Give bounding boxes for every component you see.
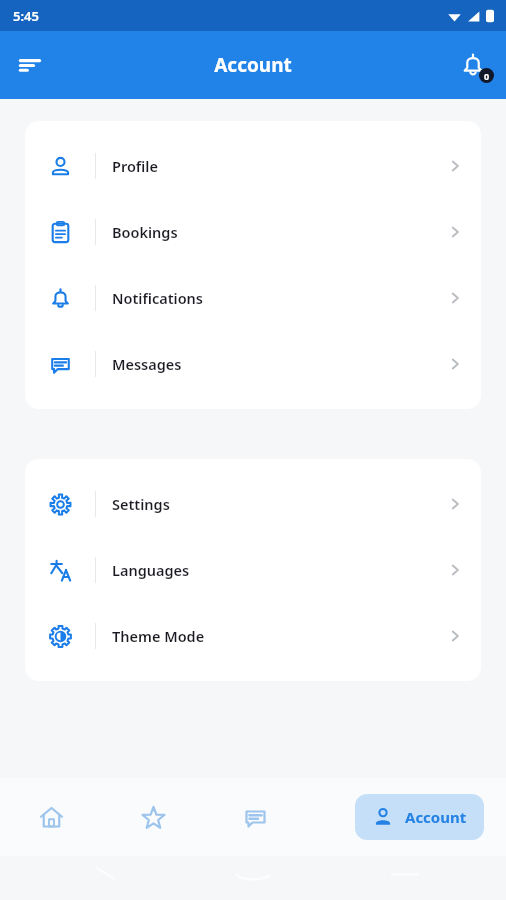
staticText: Account <box>405 807 467 827</box>
staticText: Languages <box>112 560 190 580</box>
button[interactable]: Notifications <box>450 42 496 88</box>
button[interactable]: Settings <box>25 471 481 537</box>
staticText: Theme Mode <box>112 626 205 646</box>
staticText: Bookings <box>112 222 178 242</box>
button[interactable]: Profile <box>25 133 481 199</box>
staticText: Profile <box>112 156 158 176</box>
button[interactable]: Account <box>355 794 484 840</box>
button[interactable]: Home <box>0 789 102 845</box>
button[interactable]: Notifications <box>25 265 481 331</box>
button[interactable]: Theme Mode <box>25 603 481 669</box>
staticText: Notifications <box>112 288 204 308</box>
staticText: 0 <box>484 70 490 82</box>
button[interactable]: Languages <box>25 537 481 603</box>
staticText: Settings <box>112 494 170 514</box>
button[interactable]: Favourites <box>102 789 204 845</box>
button[interactable]: Messages <box>25 331 481 397</box>
staticText: 5:45 <box>13 7 39 25</box>
staticText: Messages <box>112 354 182 374</box>
button[interactable]: Menu <box>8 43 52 87</box>
staticText: Account <box>214 52 292 78</box>
button[interactable]: Bookings <box>25 199 481 265</box>
button[interactable]: Messages <box>204 789 306 845</box>
